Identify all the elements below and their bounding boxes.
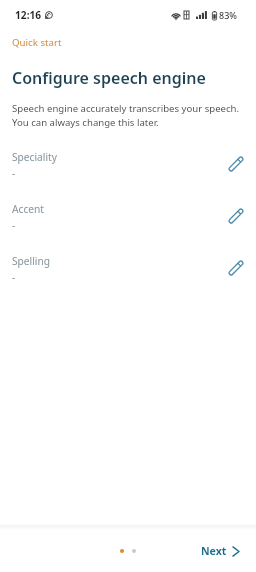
button[interactable]: Edit Spelling [220, 252, 252, 284]
staticText: Configure speech engine [12, 67, 206, 89]
staticText: - [12, 166, 16, 180]
button[interactable]: Speciality [0, 145, 256, 197]
staticText: Speciality [12, 150, 57, 164]
staticText: Speech engine accurately transcribes you… [12, 102, 240, 129]
button[interactable]: Next [187, 535, 256, 567]
staticText: Quick start [12, 36, 62, 49]
button[interactable]: Edit Speciality [220, 148, 252, 180]
staticText: 12:16 [15, 8, 42, 22]
button[interactable]: Spelling [0, 249, 256, 301]
staticText: - [12, 270, 16, 284]
staticText: Spelling [12, 254, 51, 268]
staticText: 83% [219, 9, 237, 21]
staticText: - [12, 218, 16, 232]
staticText: Next [201, 544, 227, 558]
button[interactable]: Accent [0, 197, 256, 249]
staticText: Accent [12, 202, 45, 216]
button[interactable]: Edit Accent [220, 200, 252, 232]
